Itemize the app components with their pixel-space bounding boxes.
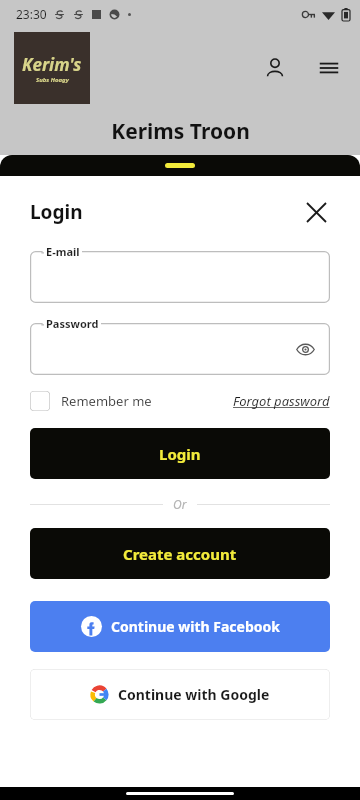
staticText: Password: [46, 316, 99, 331]
staticText: Forgot password: [233, 392, 330, 410]
staticText: Create account: [123, 544, 237, 564]
button[interactable]: Show password: [292, 336, 318, 362]
button[interactable]: Continue with Google: [30, 669, 330, 720]
staticText: Kerim's: [22, 53, 82, 76]
staticText: E-mail: [46, 244, 80, 259]
staticText: Login: [159, 444, 201, 464]
staticText: 23:30: [16, 6, 47, 22]
button[interactable]: Create account: [30, 528, 330, 579]
button[interactable]: Forgot password: [233, 392, 330, 410]
button[interactable]: Close: [302, 198, 330, 226]
staticText: Subs Hoagy: [36, 76, 69, 84]
button[interactable]: E-mail: [30, 251, 330, 303]
button[interactable]: Continue with Facebook: [30, 601, 330, 652]
button[interactable]: Account: [258, 51, 292, 85]
button[interactable]: Menu: [312, 51, 346, 85]
staticText: Login: [30, 199, 83, 225]
staticText: Continue with Google: [118, 685, 270, 704]
button[interactable]: Remember me: [30, 391, 152, 411]
staticText: Remember me: [61, 392, 152, 410]
staticText: Or: [173, 496, 187, 512]
button[interactable]: Kerims logo: [14, 32, 90, 104]
button[interactable]: Login: [30, 428, 330, 479]
button[interactable]: Password: [30, 323, 330, 375]
staticText: Continue with Facebook: [111, 617, 280, 636]
staticText: Kerims Troon: [111, 117, 250, 146]
